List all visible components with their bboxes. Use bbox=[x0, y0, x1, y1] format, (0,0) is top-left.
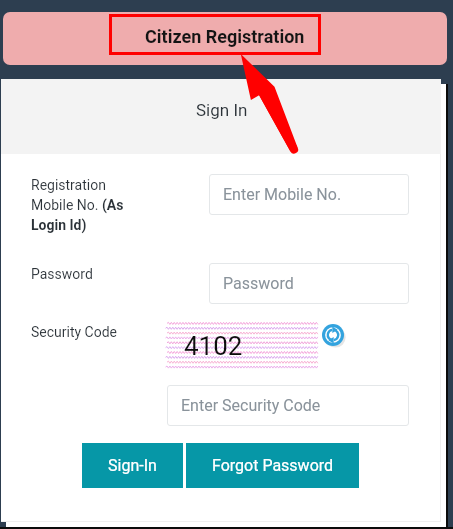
staticText: Security Code bbox=[31, 324, 118, 340]
staticText: Registration Mobile No. (As Login Id) bbox=[31, 177, 132, 233]
staticText: Sign-In bbox=[108, 456, 157, 475]
staticText: 4102 bbox=[184, 331, 243, 361]
button[interactable]: Sign-In bbox=[82, 443, 183, 488]
staticText: Sign In bbox=[196, 100, 248, 120]
staticText: Enter Security Code bbox=[181, 396, 321, 415]
button[interactable]: Password bbox=[209, 263, 409, 304]
staticText: Enter Mobile No. bbox=[223, 185, 342, 204]
button[interactable]: Forgot Password bbox=[186, 443, 359, 488]
button[interactable]: Refresh security code bbox=[322, 324, 344, 346]
staticText: Password bbox=[223, 274, 294, 293]
staticText: Citizen Registration bbox=[145, 26, 305, 47]
button[interactable]: Enter Mobile No. bbox=[209, 174, 409, 215]
staticText: Password bbox=[31, 266, 93, 282]
button[interactable]: Citizen Registration bbox=[3, 12, 447, 65]
staticText: Forgot Password bbox=[212, 456, 334, 475]
button[interactable]: Enter Security Code bbox=[167, 385, 409, 426]
